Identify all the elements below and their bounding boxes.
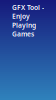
staticText: GFX Tool - Enjoy Playing Games: [12, 3, 44, 38]
